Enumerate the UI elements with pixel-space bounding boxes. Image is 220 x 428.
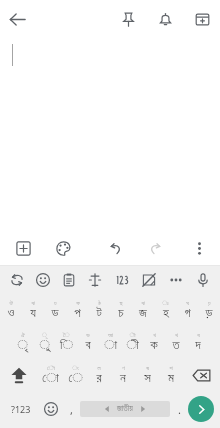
staticText: ক [150,339,158,352]
button[interactable]: Emoji [38,392,64,426]
button[interactable]: Text editing [82,266,108,294]
button[interactable]: Voice input [189,266,216,294]
staticText: জাতীয় [117,405,133,413]
staticText: চ [118,307,124,320]
button[interactable]: ছ [110,294,132,326]
button[interactable]: ৌ [38,358,63,392]
staticText: য [30,307,36,320]
staticText: ঠ [98,300,101,306]
button[interactable]: থ [165,326,187,358]
button[interactable]: Archive [187,4,217,34]
staticText: ছ [119,300,123,306]
staticText: ড় [205,307,213,320]
button[interactable]: Color [48,233,78,263]
button[interactable]: ঐ [11,326,33,358]
staticText: ?123 [11,403,31,415]
button[interactable]: Emoji [30,266,56,294]
staticText: ৈ [63,332,70,338]
button[interactable]: Numbers [108,266,135,294]
staticText: ন [120,372,126,385]
staticText: ধ [197,332,200,338]
staticText: থ [175,332,178,338]
button[interactable]: . [172,392,186,426]
staticText: ঢ [54,300,57,306]
staticText: ৃ [17,339,28,352]
staticText: ষ [146,365,149,371]
button[interactable]: Undo [100,233,130,263]
button[interactable]: ?123 [4,392,38,426]
button[interactable]: ধ [187,326,209,358]
button[interactable]: ঢ় [198,294,220,326]
button[interactable]: ং [63,358,87,392]
button[interactable]: ঠ [88,294,110,326]
button[interactable]: Backspace [183,358,220,392]
button[interactable]: ৗ [121,326,143,358]
staticText: ব [85,339,91,352]
staticText: ত [172,339,180,352]
staticText: ফ [76,300,80,306]
staticText: ম [168,372,174,385]
staticText: শ [169,365,173,371]
button[interactable]: Pin [113,4,143,34]
button[interactable]: ঃ [154,294,176,326]
staticText: দ [195,339,201,352]
button[interactable]: , [64,392,78,426]
button[interactable]: ঝ [132,294,154,326]
staticText: ঃ [162,300,169,306]
button[interactable]: ণ [111,358,135,392]
staticText: খ [153,332,156,338]
staticText: আ [108,332,113,338]
button[interactable]: খ [143,326,165,358]
staticText: া [104,339,117,352]
button[interactable]: ঢ [44,294,66,326]
staticText: ঝ [31,300,35,306]
button[interactable]: More [162,266,189,294]
staticText: ঐ [21,332,25,338]
staticText: ঝ [141,300,145,306]
button[interactable]: Space [80,401,170,417]
staticText: ল [97,365,101,371]
button[interactable]: Shift [0,358,38,392]
button[interactable]: ূ [33,326,55,358]
staticText: ও [7,307,15,320]
staticText: হ [163,307,169,320]
staticText: ু [39,339,50,352]
staticText: ী [126,339,139,352]
staticText: ে [68,372,83,385]
button[interactable]: Switch language [4,266,30,294]
staticText: গ [184,307,191,320]
staticText: . [178,402,181,417]
staticText: ঢ় [208,300,211,306]
staticText: ো [42,372,59,385]
button[interactable]: ঔ [0,294,22,326]
staticText: ট [96,307,102,320]
staticText: প [74,307,81,320]
button[interactable]: Add [8,233,38,263]
button[interactable]: আ [99,326,121,358]
staticText: স [144,372,151,385]
staticText: র [96,372,102,385]
button[interactable]: ঘ [176,294,198,326]
button[interactable]: ষ [135,358,159,392]
button[interactable]: Stickers off [135,266,162,294]
button[interactable]: ফ [66,294,88,326]
staticText: ভ [86,332,90,338]
button[interactable]: ঝ [22,294,44,326]
button[interactable]: ৈ [55,326,77,358]
button[interactable]: ভ [77,326,99,358]
staticText: ূ [42,332,47,338]
staticText: ং [72,365,79,371]
button[interactable]: Redo [140,233,170,263]
button[interactable]: শ [159,358,183,392]
staticText: ড [51,307,59,320]
button[interactable]: Back [2,4,32,34]
button[interactable]: Send [188,396,214,422]
staticText: ৌ [47,365,55,371]
staticText: ঘ [186,300,189,306]
button[interactable]: ল [87,358,111,392]
button[interactable]: Reminder [150,4,180,34]
button[interactable]: More options [184,233,214,263]
staticText: ণ [122,365,125,371]
staticText: ঔ [9,300,13,306]
button[interactable]: Clipboard [56,266,82,294]
